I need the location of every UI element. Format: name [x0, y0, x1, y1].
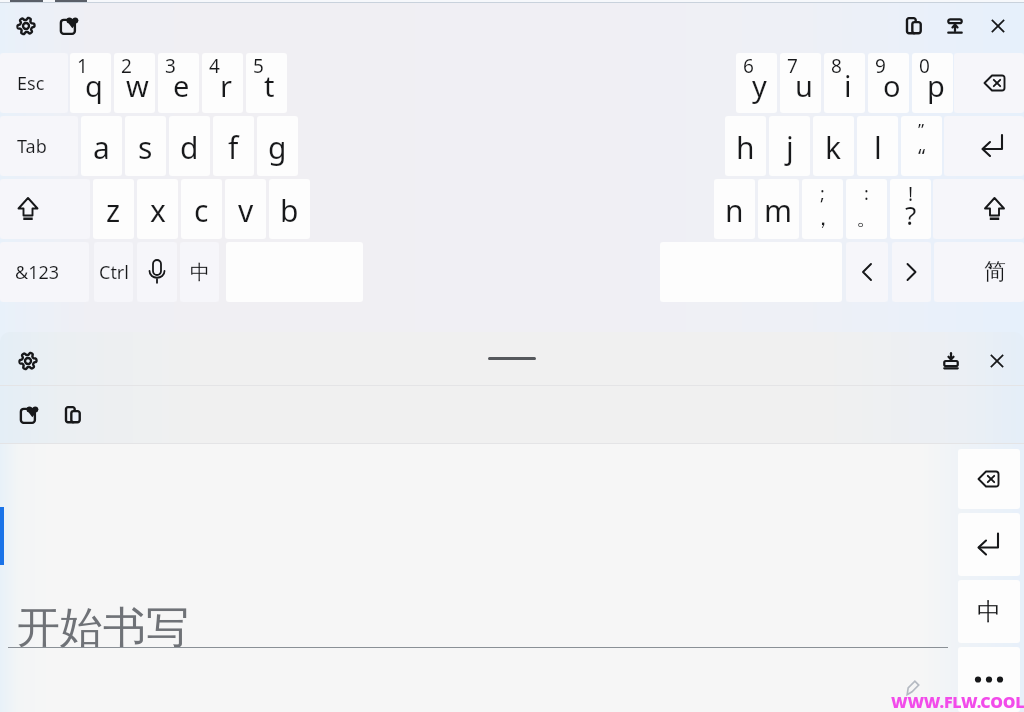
button[interactable]: m: [758, 179, 799, 239]
staticText: 6: [743, 53, 754, 79]
button[interactable]: 4: [202, 53, 243, 113]
button[interactable]: h: [725, 116, 766, 176]
button[interactable]: Clipboard: [900, 12, 928, 40]
staticText: w: [126, 66, 149, 105]
staticText: 中: [977, 597, 1001, 627]
staticText: c: [194, 190, 209, 231]
button[interactable]: 5: [246, 53, 287, 113]
button[interactable]: 8: [824, 53, 865, 113]
staticText: :: [864, 181, 869, 206]
staticText: j: [786, 127, 794, 168]
staticText: v: [238, 190, 254, 231]
button[interactable]: k: [813, 116, 854, 176]
button[interactable]: n: [714, 179, 755, 239]
staticText: WWW.FLW.COOL: [891, 691, 1024, 712]
staticText: Tab: [17, 134, 47, 159]
staticText: 8: [831, 53, 842, 79]
button[interactable]: Voice input: [137, 242, 177, 302]
button[interactable]: :: [846, 179, 887, 239]
staticText: h: [736, 127, 755, 168]
staticText: k: [825, 127, 842, 168]
button[interactable]: z: [93, 179, 134, 239]
staticText: 9: [875, 53, 886, 79]
staticText: l: [874, 127, 882, 168]
button[interactable]: ”: [901, 116, 942, 176]
button[interactable]: d: [169, 116, 210, 176]
staticText: 2: [121, 53, 132, 79]
staticText: n: [725, 190, 744, 231]
staticText: 3: [165, 53, 176, 79]
button[interactable]: Previous: [846, 242, 888, 302]
button[interactable]: Backspace: [958, 449, 1020, 509]
staticText: d: [180, 127, 199, 168]
button[interactable]: ;: [802, 179, 843, 239]
staticText: b: [280, 190, 299, 231]
button[interactable]: b: [269, 179, 310, 239]
staticText: ?: [905, 197, 917, 232]
button[interactable]: [488, 357, 536, 360]
button[interactable]: &123: [0, 242, 89, 302]
button[interactable]: 1: [70, 53, 111, 113]
button[interactable]: Stickers: [55, 12, 83, 40]
button[interactable]: g: [257, 116, 298, 176]
button[interactable]: j: [769, 116, 810, 176]
button[interactable]: Settings: [14, 347, 42, 375]
staticText: 开始书写: [17, 601, 189, 655]
button[interactable]: Close keyboard: [984, 12, 1012, 40]
button[interactable]: Dock keyboard: [941, 12, 969, 40]
button[interactable]: Tab: [0, 116, 78, 176]
button[interactable]: Ctrl: [94, 242, 133, 302]
button[interactable]: Esc: [0, 53, 68, 113]
staticText: Ctrl: [99, 260, 129, 285]
button[interactable]: 7: [780, 53, 821, 113]
staticText: 。: [856, 204, 878, 232]
button[interactable]: Shift: [933, 179, 1024, 239]
staticText: 5: [253, 53, 264, 79]
staticText: a: [93, 127, 110, 168]
button[interactable]: l: [857, 116, 898, 176]
button[interactable]: Settings: [12, 12, 40, 40]
staticText: ;: [820, 181, 825, 206]
button[interactable]: v: [225, 179, 266, 239]
button[interactable]: a: [81, 116, 122, 176]
staticText: t: [264, 66, 275, 105]
button[interactable]: 3: [158, 53, 199, 113]
button[interactable]: More options: [958, 647, 1020, 712]
button[interactable]: Clipboard: [59, 401, 87, 429]
staticText: 0: [919, 53, 930, 79]
button[interactable]: 6: [736, 53, 777, 113]
staticText: q: [85, 66, 103, 105]
button[interactable]: 9: [868, 53, 909, 113]
staticText: 7: [787, 53, 798, 79]
button[interactable]: 简: [934, 242, 1024, 302]
button[interactable]: 2: [114, 53, 155, 113]
button[interactable]: Enter: [944, 116, 1024, 176]
button[interactable]: f: [213, 116, 254, 176]
staticText: 1: [77, 53, 88, 79]
staticText: y: [752, 66, 767, 105]
staticText: f: [228, 127, 239, 168]
button[interactable]: !: [890, 179, 931, 239]
button[interactable]: 0: [912, 53, 953, 113]
button[interactable]: Enter: [958, 513, 1020, 576]
staticText: i: [844, 66, 852, 105]
button[interactable]: Close panel: [983, 347, 1011, 375]
staticText: 简: [984, 258, 1006, 286]
button[interactable]: s: [125, 116, 166, 176]
button[interactable]: 中: [180, 242, 219, 302]
staticText: e: [173, 66, 190, 105]
staticText: 中: [190, 260, 210, 285]
staticText: Esc: [17, 71, 45, 96]
staticText: m: [764, 190, 793, 231]
button[interactable]: Backspace: [954, 53, 1024, 113]
button[interactable]: c: [181, 179, 222, 239]
button[interactable]: Shift: [0, 179, 90, 239]
button[interactable]: 中: [958, 580, 1020, 643]
button[interactable]: Dock panel: [937, 347, 965, 375]
button[interactable]: Next: [892, 242, 931, 302]
button[interactable]: Stickers: [15, 401, 43, 429]
button[interactable]: x: [137, 179, 178, 239]
staticText: ”: [918, 118, 925, 141]
